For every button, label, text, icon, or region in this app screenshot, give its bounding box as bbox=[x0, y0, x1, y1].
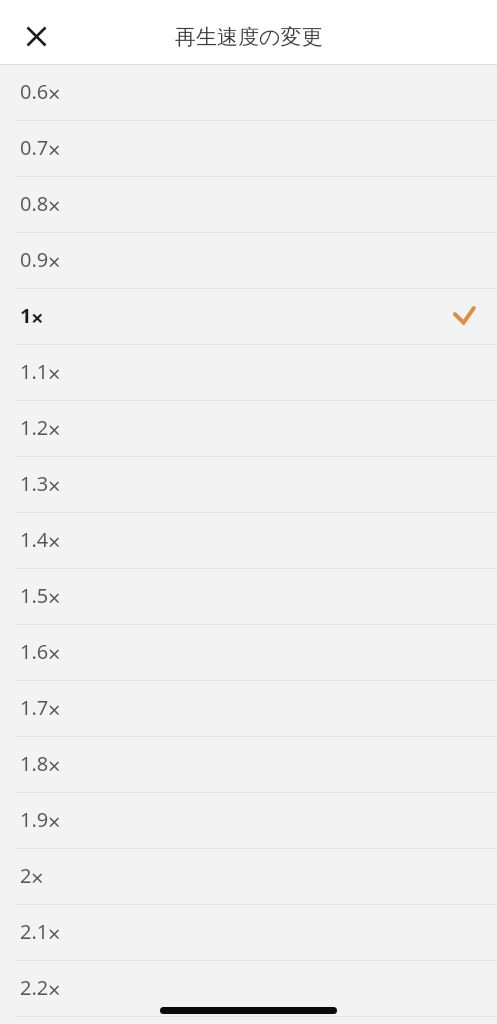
staticText: × bbox=[48, 694, 61, 724]
staticText: 1.7 bbox=[20, 694, 49, 721]
button[interactable]: 1.9 bbox=[0, 793, 497, 849]
staticText: × bbox=[48, 638, 61, 668]
staticText: × bbox=[48, 582, 61, 612]
button[interactable]: 1.1 bbox=[0, 345, 497, 401]
button[interactable]: 1.3 bbox=[0, 457, 497, 513]
staticText: × bbox=[48, 190, 61, 220]
button[interactable]: 1 bbox=[0, 289, 497, 345]
button[interactable]: Close bbox=[16, 16, 56, 56]
staticText: 1.8 bbox=[20, 750, 49, 777]
staticText: 2.2 bbox=[20, 974, 49, 1001]
staticText: 0.7 bbox=[20, 134, 49, 161]
button[interactable]: 1.8 bbox=[0, 737, 497, 793]
staticText: 0.9 bbox=[20, 246, 49, 273]
staticText: 1.2 bbox=[20, 414, 49, 441]
staticText: 1.6 bbox=[20, 638, 49, 665]
staticText: × bbox=[48, 414, 61, 444]
staticText: × bbox=[48, 246, 61, 276]
staticText: × bbox=[48, 806, 61, 836]
button[interactable]: 1.7 bbox=[0, 681, 497, 737]
button[interactable]: 1.2 bbox=[0, 401, 497, 457]
staticText: × bbox=[48, 918, 61, 948]
button[interactable]: 2 bbox=[0, 849, 497, 905]
staticText: 2 bbox=[20, 862, 32, 889]
staticText: 再生速度の変更 bbox=[175, 24, 323, 50]
staticText: × bbox=[31, 302, 44, 332]
staticText: × bbox=[48, 526, 61, 556]
staticText: × bbox=[48, 470, 61, 500]
staticText: 1.3 bbox=[20, 470, 49, 497]
staticText: 1.9 bbox=[20, 806, 49, 833]
button[interactable]: 0.8 bbox=[0, 177, 497, 233]
button[interactable]: 2.2 bbox=[0, 961, 497, 1017]
staticText: 2.1 bbox=[20, 918, 49, 945]
button[interactable]: 0.9 bbox=[0, 233, 497, 289]
staticText: × bbox=[48, 134, 61, 164]
staticText: × bbox=[48, 358, 61, 388]
button[interactable]: 1.5 bbox=[0, 569, 497, 625]
staticText: × bbox=[48, 750, 61, 780]
staticText: 1 bbox=[20, 302, 32, 329]
button[interactable]: 1.6 bbox=[0, 625, 497, 681]
button[interactable]: 1.4 bbox=[0, 513, 497, 569]
staticText: 0.8 bbox=[20, 190, 49, 217]
staticText: 1.5 bbox=[20, 582, 49, 609]
button[interactable]: 2.1 bbox=[0, 905, 497, 961]
button[interactable]: 0.7 bbox=[0, 121, 497, 177]
staticText: 0.6 bbox=[20, 78, 49, 105]
staticText: × bbox=[48, 974, 61, 1004]
staticText: × bbox=[48, 78, 61, 108]
staticText: 1.1 bbox=[20, 358, 49, 385]
staticText: × bbox=[31, 862, 44, 892]
button[interactable]: 0.6 bbox=[0, 65, 497, 121]
staticText: 1.4 bbox=[20, 526, 49, 553]
